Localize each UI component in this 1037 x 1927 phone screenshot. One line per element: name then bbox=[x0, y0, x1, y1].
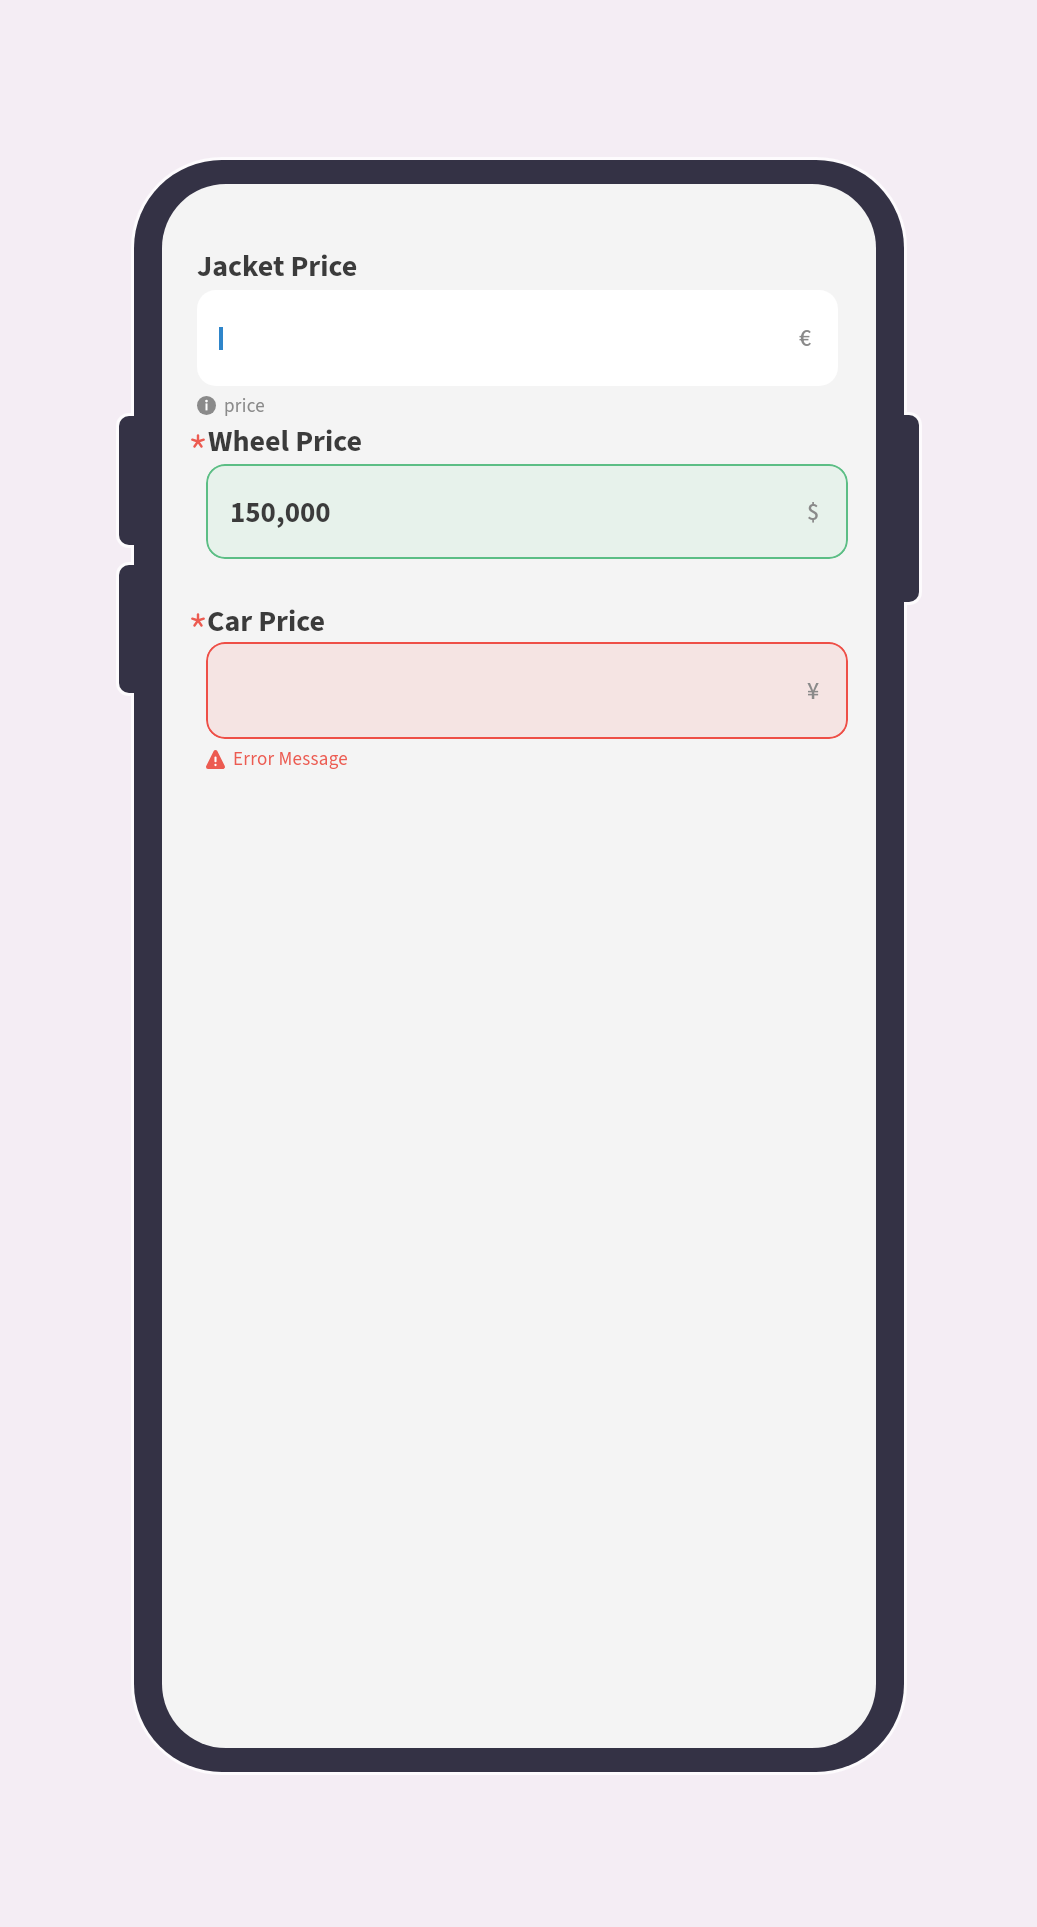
staticText: Jacket Price bbox=[197, 245, 358, 288]
staticText: Error Message bbox=[233, 746, 349, 773]
staticText: 150,000 bbox=[230, 492, 331, 533]
button[interactable]: ¥ bbox=[206, 642, 848, 739]
staticText: ¥ bbox=[807, 674, 820, 708]
other: Error bbox=[206, 750, 225, 769]
staticText: Wheel Price bbox=[208, 420, 363, 463]
staticText: price bbox=[224, 393, 265, 420]
button[interactable]: 150,000 bbox=[206, 464, 848, 559]
other: Information bbox=[197, 396, 216, 415]
staticText: $ bbox=[807, 495, 820, 529]
button[interactable]: € bbox=[197, 290, 838, 386]
staticText: € bbox=[799, 321, 812, 355]
staticText: Car Price bbox=[207, 600, 326, 643]
